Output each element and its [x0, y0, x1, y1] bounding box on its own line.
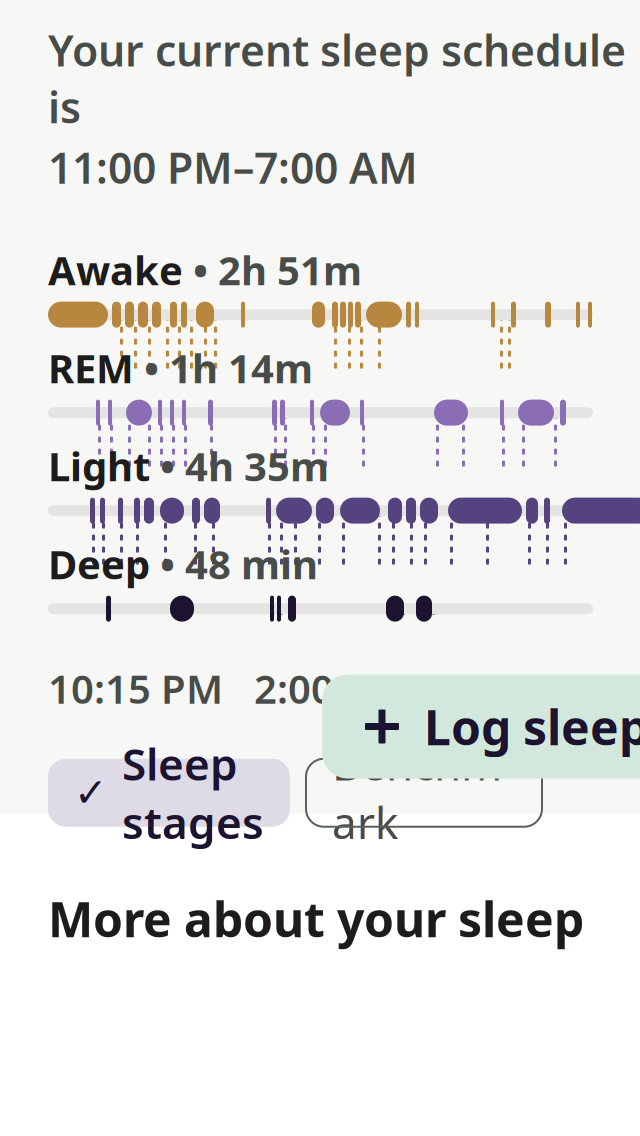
- staticText: 2:00 AM: [254, 662, 408, 715]
- staticText: Log sleep: [424, 695, 640, 758]
- staticText: More about your sleep: [48, 887, 584, 950]
- staticText: •: [134, 341, 169, 394]
- staticText: 10:15 PM: [48, 662, 223, 715]
- button[interactable]: ✓: [48, 759, 290, 827]
- staticText: 4h 35m: [185, 439, 329, 492]
- staticText: •: [150, 537, 185, 590]
- staticText: •: [183, 243, 218, 296]
- button[interactable]: Benchmark: [306, 759, 542, 827]
- staticText: REM: [48, 341, 134, 394]
- staticText: 48 min: [185, 537, 318, 590]
- staticText: 11:00 PM–7:00 AM: [48, 139, 418, 196]
- staticText: 6:45 AM: [439, 662, 593, 715]
- staticText: ✓: [74, 770, 108, 815]
- staticText: Deep: [48, 537, 150, 590]
- staticText: 1h 14m: [169, 341, 313, 394]
- staticText: Light: [48, 439, 150, 492]
- staticText: 2h 51m: [218, 243, 362, 296]
- staticText: Benchmark: [332, 734, 516, 851]
- staticText: Sleep stages: [122, 734, 264, 851]
- staticText: •: [150, 439, 185, 492]
- staticText: Awake: [48, 243, 183, 296]
- staticText: Your current sleep schedule is: [48, 22, 626, 135]
- button[interactable]: Log sleep: [322, 674, 640, 778]
